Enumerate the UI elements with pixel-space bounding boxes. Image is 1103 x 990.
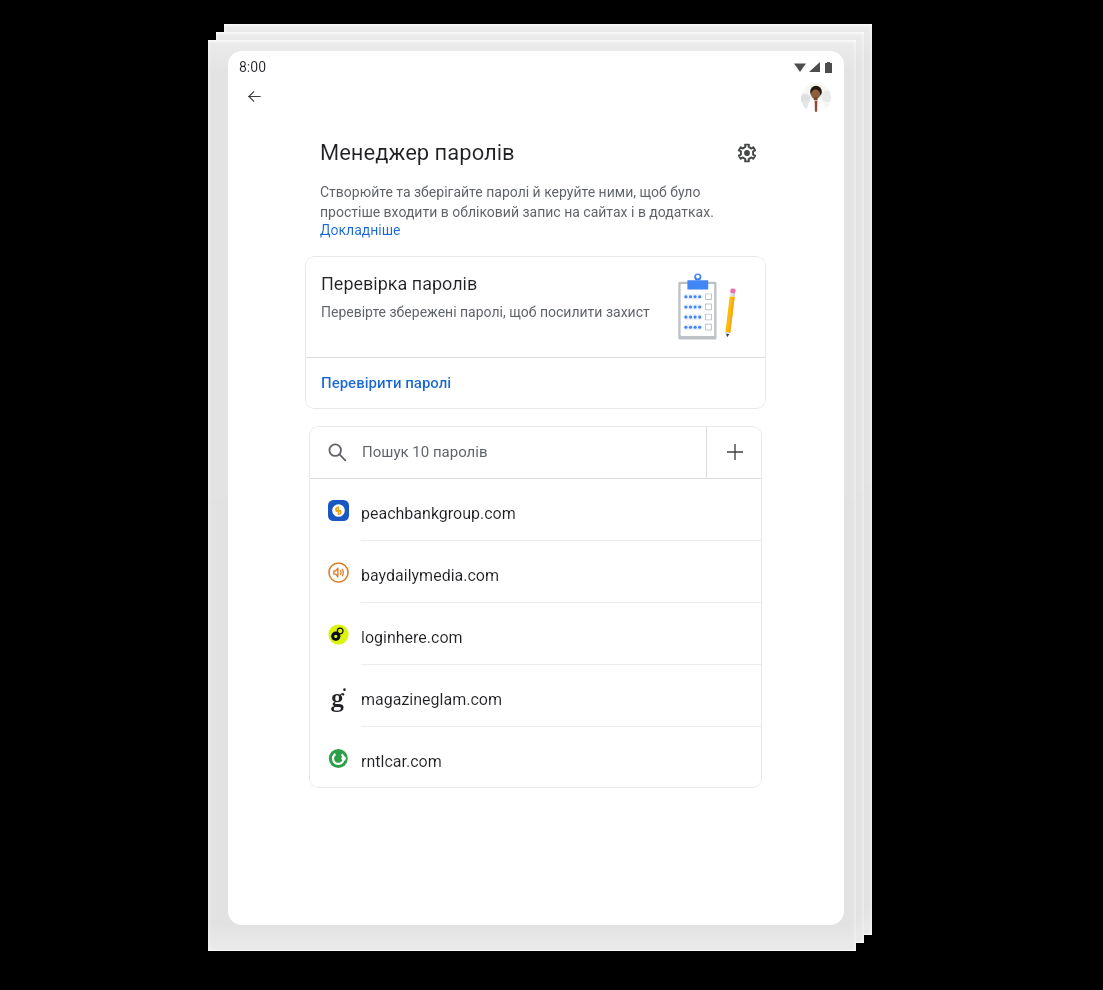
staticText: g <box>331 681 345 714</box>
button[interactable]: peachbankgroup.com <box>309 479 762 540</box>
staticText: peachbankgroup.com <box>361 504 516 523</box>
staticText: loginhere.com <box>361 628 463 647</box>
staticText: Перевірте збережені паролі, щоб посилити… <box>321 304 650 320</box>
button[interactable]: Back <box>235 77 274 116</box>
staticText: Докладніше <box>320 222 401 238</box>
button[interactable]: baydailymedia.com <box>309 540 762 602</box>
staticText: Перевірити паролі <box>321 374 452 392</box>
staticText: Перевірка паролів <box>321 273 478 294</box>
button[interactable]: Пошук 10 паролів <box>309 426 706 478</box>
staticText: rntlcar.com <box>361 752 442 771</box>
staticText: 8:00 <box>239 59 266 75</box>
staticText: Пошук 10 паролів <box>362 443 488 461</box>
button[interactable]: Settings <box>726 132 768 174</box>
button[interactable]: rntlcar.com <box>309 726 762 788</box>
staticText: baydailymedia.com <box>361 566 499 585</box>
button[interactable]: g <box>309 664 762 726</box>
button[interactable]: loginhere.com <box>309 602 762 664</box>
staticText: Створюйте та зберігайте паролі й керуйте… <box>320 184 714 220</box>
staticText: Менеджер паролів <box>320 140 515 166</box>
button[interactable]: Add password <box>707 426 762 478</box>
staticText: magazineglam.com <box>361 690 502 709</box>
button[interactable]: Докладніше <box>320 222 401 238</box>
button[interactable]: Перевірити паролі <box>305 358 766 408</box>
button[interactable]: Account <box>801 83 831 113</box>
